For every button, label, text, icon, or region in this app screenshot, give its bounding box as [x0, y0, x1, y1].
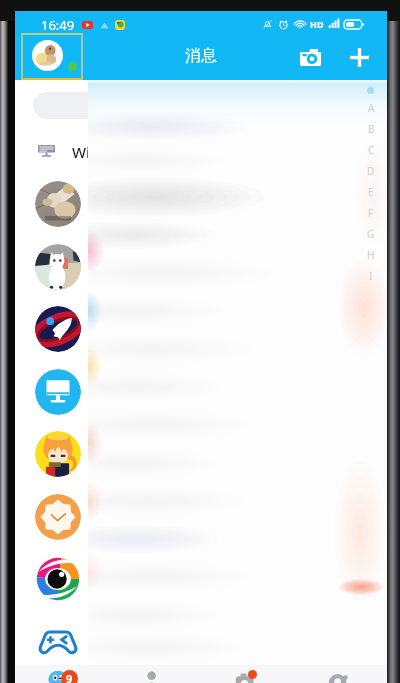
button[interactable]: Discover [201, 665, 294, 683]
button[interactable]: Profile [21, 33, 83, 80]
button[interactable]: Contacts [108, 665, 201, 683]
staticText: 消息 [185, 46, 217, 66]
button[interactable]: Contact 4 [35, 369, 81, 415]
staticText: Wi [72, 142, 91, 160]
button[interactable]: Search [33, 92, 125, 119]
button[interactable]: Contact 5 [35, 431, 81, 477]
button[interactable]: Contact 8 [35, 619, 81, 665]
staticText: E [368, 185, 374, 199]
button[interactable]: Add [343, 41, 375, 73]
staticText: I [369, 269, 373, 283]
staticText: 16:49 [41, 16, 75, 34]
button[interactable]: Contact 1 [35, 181, 81, 227]
button[interactable]: Camera [294, 41, 326, 73]
staticText: 9 [66, 671, 73, 683]
staticText: A [368, 101, 375, 115]
button[interactable]: Contact 6 [35, 494, 81, 540]
staticText: H [367, 248, 375, 262]
button[interactable]: Profile [294, 665, 387, 683]
button[interactable]: Wi [38, 142, 118, 160]
button[interactable]: Messages [15, 665, 108, 683]
staticText: F [368, 206, 374, 220]
staticText: HD [310, 18, 324, 30]
button[interactable]: Contact 3 [35, 306, 81, 352]
staticText: D [367, 164, 375, 178]
button[interactable]: Contact 2 [35, 244, 81, 290]
staticText: B [368, 122, 375, 136]
staticText: G [367, 227, 375, 241]
button[interactable]: Contact 7 [35, 556, 81, 602]
staticText: C [368, 143, 375, 157]
